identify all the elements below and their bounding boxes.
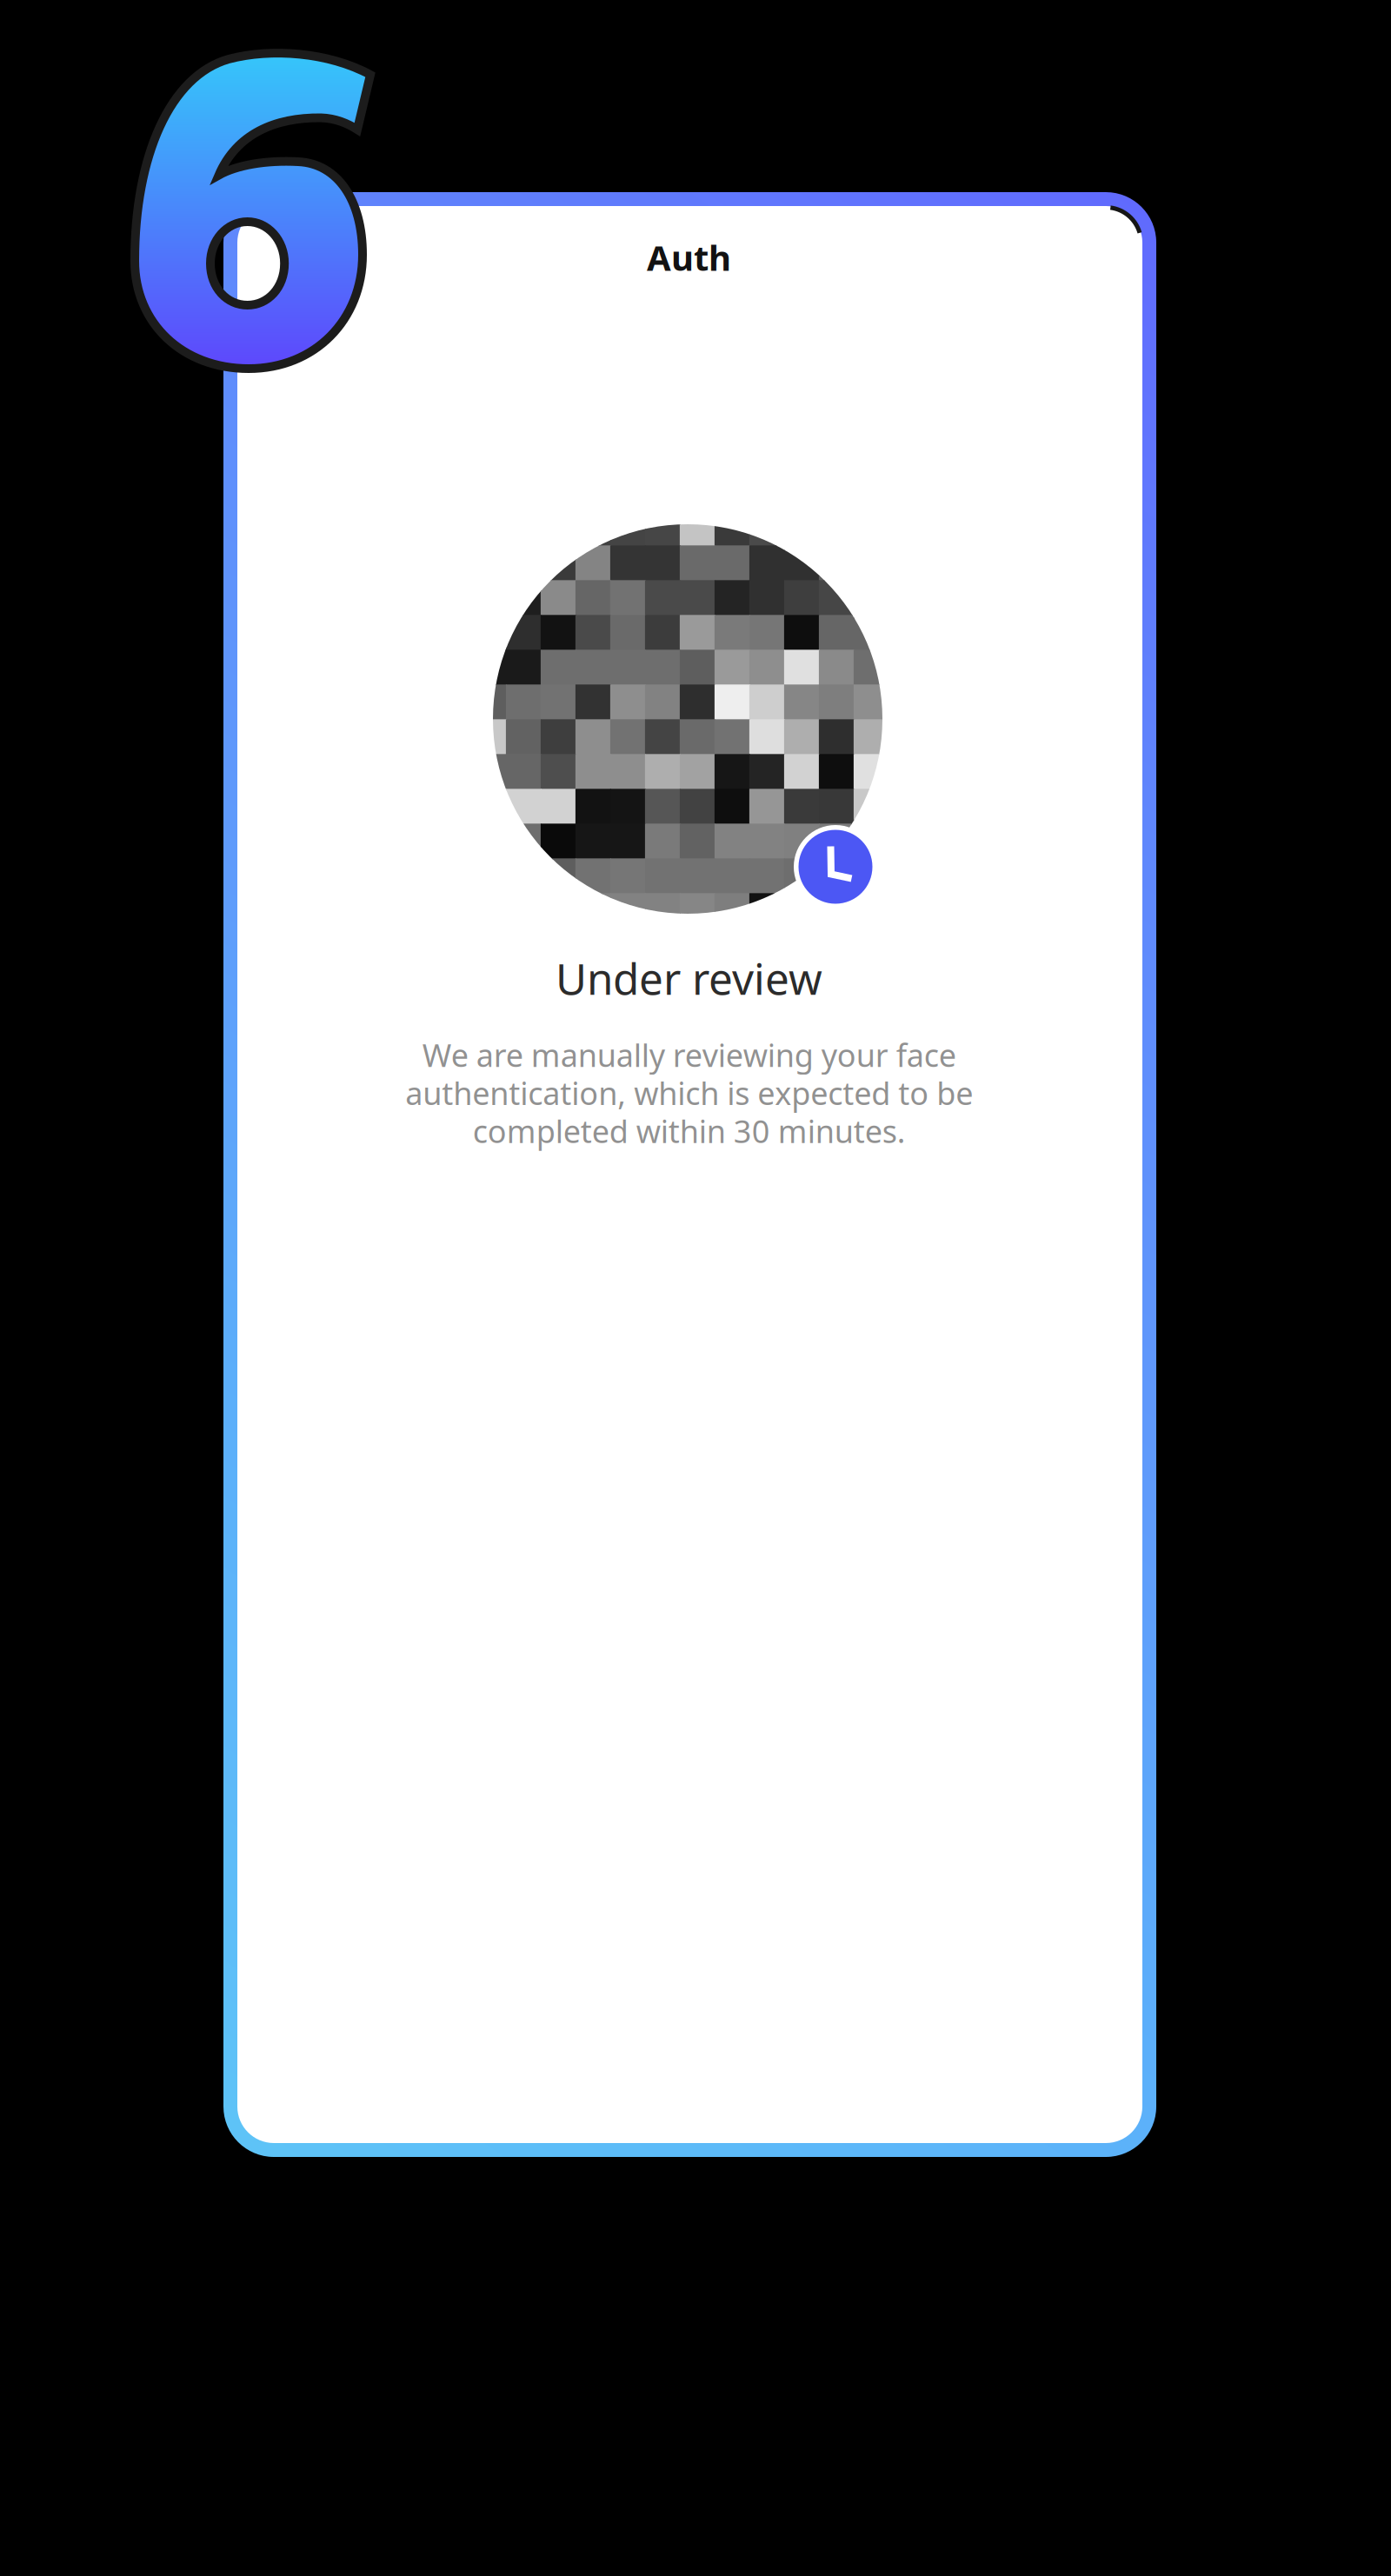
staticText: Under review [556, 950, 822, 1006]
button[interactable]: Auth [647, 234, 731, 280]
staticText: We are manually reviewing your face auth… [405, 1034, 973, 1152]
staticText: Auth [647, 234, 731, 280]
